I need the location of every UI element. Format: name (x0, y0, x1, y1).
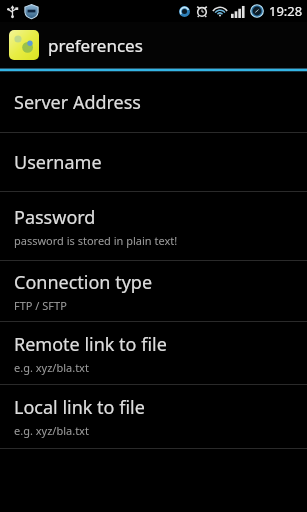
staticText: e.g. xyz/bla.txt (14, 360, 89, 375)
button[interactable]: Username (0, 133, 307, 191)
staticText: Remote link to file (14, 332, 167, 357)
button[interactable]: Server Address (0, 72, 307, 132)
staticText: password is stored in plain text! (14, 233, 178, 248)
staticText: Connection type (14, 270, 153, 295)
button[interactable]: Connection type (0, 261, 307, 321)
staticText: 19:28 (269, 2, 303, 20)
staticText: FTP / SFTP (14, 298, 67, 313)
button[interactable]: Password (0, 192, 307, 260)
staticText: e.g. xyz/bla.txt (14, 423, 89, 438)
staticText: Local link to file (14, 395, 145, 420)
button[interactable]: Remote link to file (0, 322, 307, 384)
button[interactable]: Local link to file (0, 385, 307, 448)
staticText: Password (14, 205, 96, 230)
staticText: preferences (48, 34, 143, 57)
staticText: Username (14, 150, 102, 175)
staticText: Server Address (14, 90, 141, 115)
